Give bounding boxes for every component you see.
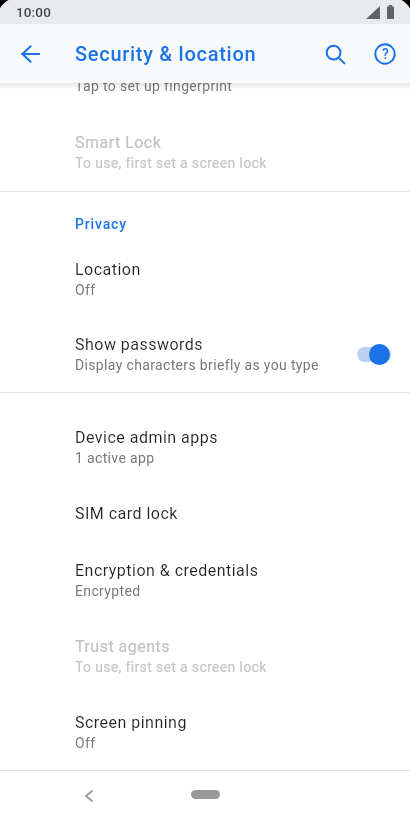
staticText: Off (75, 735, 96, 751)
button[interactable]: Encryption & credentials (0, 542, 410, 618)
staticText: To use, first set a screen lock (75, 659, 267, 675)
staticText: Smart Lock (75, 133, 162, 152)
staticText: Location (75, 260, 141, 279)
staticText: SIM card lock (75, 504, 178, 523)
staticText: Encryption & credentials (75, 561, 259, 580)
staticText: Encrypted (75, 583, 141, 599)
button[interactable]: Smart Lock (0, 95, 410, 191)
staticText: 10:00 (16, 4, 51, 20)
staticText: 1 active app (75, 450, 155, 466)
button[interactable]: Help (361, 30, 409, 78)
staticText: Display characters briefly as you type (75, 357, 319, 373)
button[interactable]: Show passwords (342, 336, 394, 372)
button[interactable]: Location (0, 240, 410, 316)
staticText: Off (75, 282, 96, 298)
button[interactable]: Home (191, 790, 220, 799)
button[interactable]: Show passwords (0, 316, 410, 392)
button[interactable]: Device admin apps (0, 409, 410, 485)
staticText: Security & location (75, 42, 257, 65)
staticText: To use, first set a screen lock (75, 155, 267, 171)
button[interactable]: Search (311, 30, 359, 78)
staticText: ? (382, 46, 389, 62)
staticText: Device admin apps (75, 428, 218, 447)
button[interactable]: Back (71, 778, 107, 814)
button[interactable]: Screen pinning (0, 694, 410, 770)
staticText: Trust agents (75, 637, 170, 656)
staticText: Show passwords (75, 335, 204, 354)
button[interactable]: Navigate up (7, 30, 55, 78)
button[interactable]: SIM card lock (0, 485, 410, 542)
button[interactable]: Trust agents (0, 618, 410, 694)
staticText: Tap to set up fingerprint (75, 83, 233, 94)
staticText: Privacy (75, 216, 127, 232)
staticText: Screen pinning (75, 713, 187, 732)
